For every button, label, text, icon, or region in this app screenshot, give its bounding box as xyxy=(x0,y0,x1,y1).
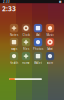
staticText: Mail xyxy=(35,33,40,37)
staticText: 2:33 xyxy=(2,4,16,13)
staticText: Safari xyxy=(47,47,53,51)
button[interactable]: Safari xyxy=(44,38,56,51)
button[interactable]: Music xyxy=(44,24,56,37)
staticText: Wallet xyxy=(34,61,42,65)
button[interactable]: Notes xyxy=(8,24,20,37)
button[interactable]: Wallet xyxy=(32,52,44,65)
button[interactable]: Clock xyxy=(20,24,32,37)
button[interactable]: Maps xyxy=(8,38,20,51)
button[interactable]: Files xyxy=(20,38,32,51)
staticText: Health xyxy=(9,61,18,65)
staticText: Clock xyxy=(22,33,29,37)
button[interactable]: Photos xyxy=(32,38,44,51)
staticText: Photos xyxy=(33,47,43,51)
staticText: Notes xyxy=(10,33,18,37)
staticText: Music xyxy=(46,33,53,37)
staticText: 2:33 xyxy=(3,0,10,3)
button[interactable]: Mail xyxy=(32,24,44,37)
staticText: ▮▮ xyxy=(59,0,61,3)
button[interactable]: Store xyxy=(44,52,56,65)
staticText: Files xyxy=(23,47,29,51)
staticText: Home xyxy=(22,61,30,65)
staticText: Maps xyxy=(11,47,17,51)
button[interactable]: Home xyxy=(20,52,32,65)
button[interactable]: Health xyxy=(8,52,20,65)
staticText: Store xyxy=(46,61,53,65)
